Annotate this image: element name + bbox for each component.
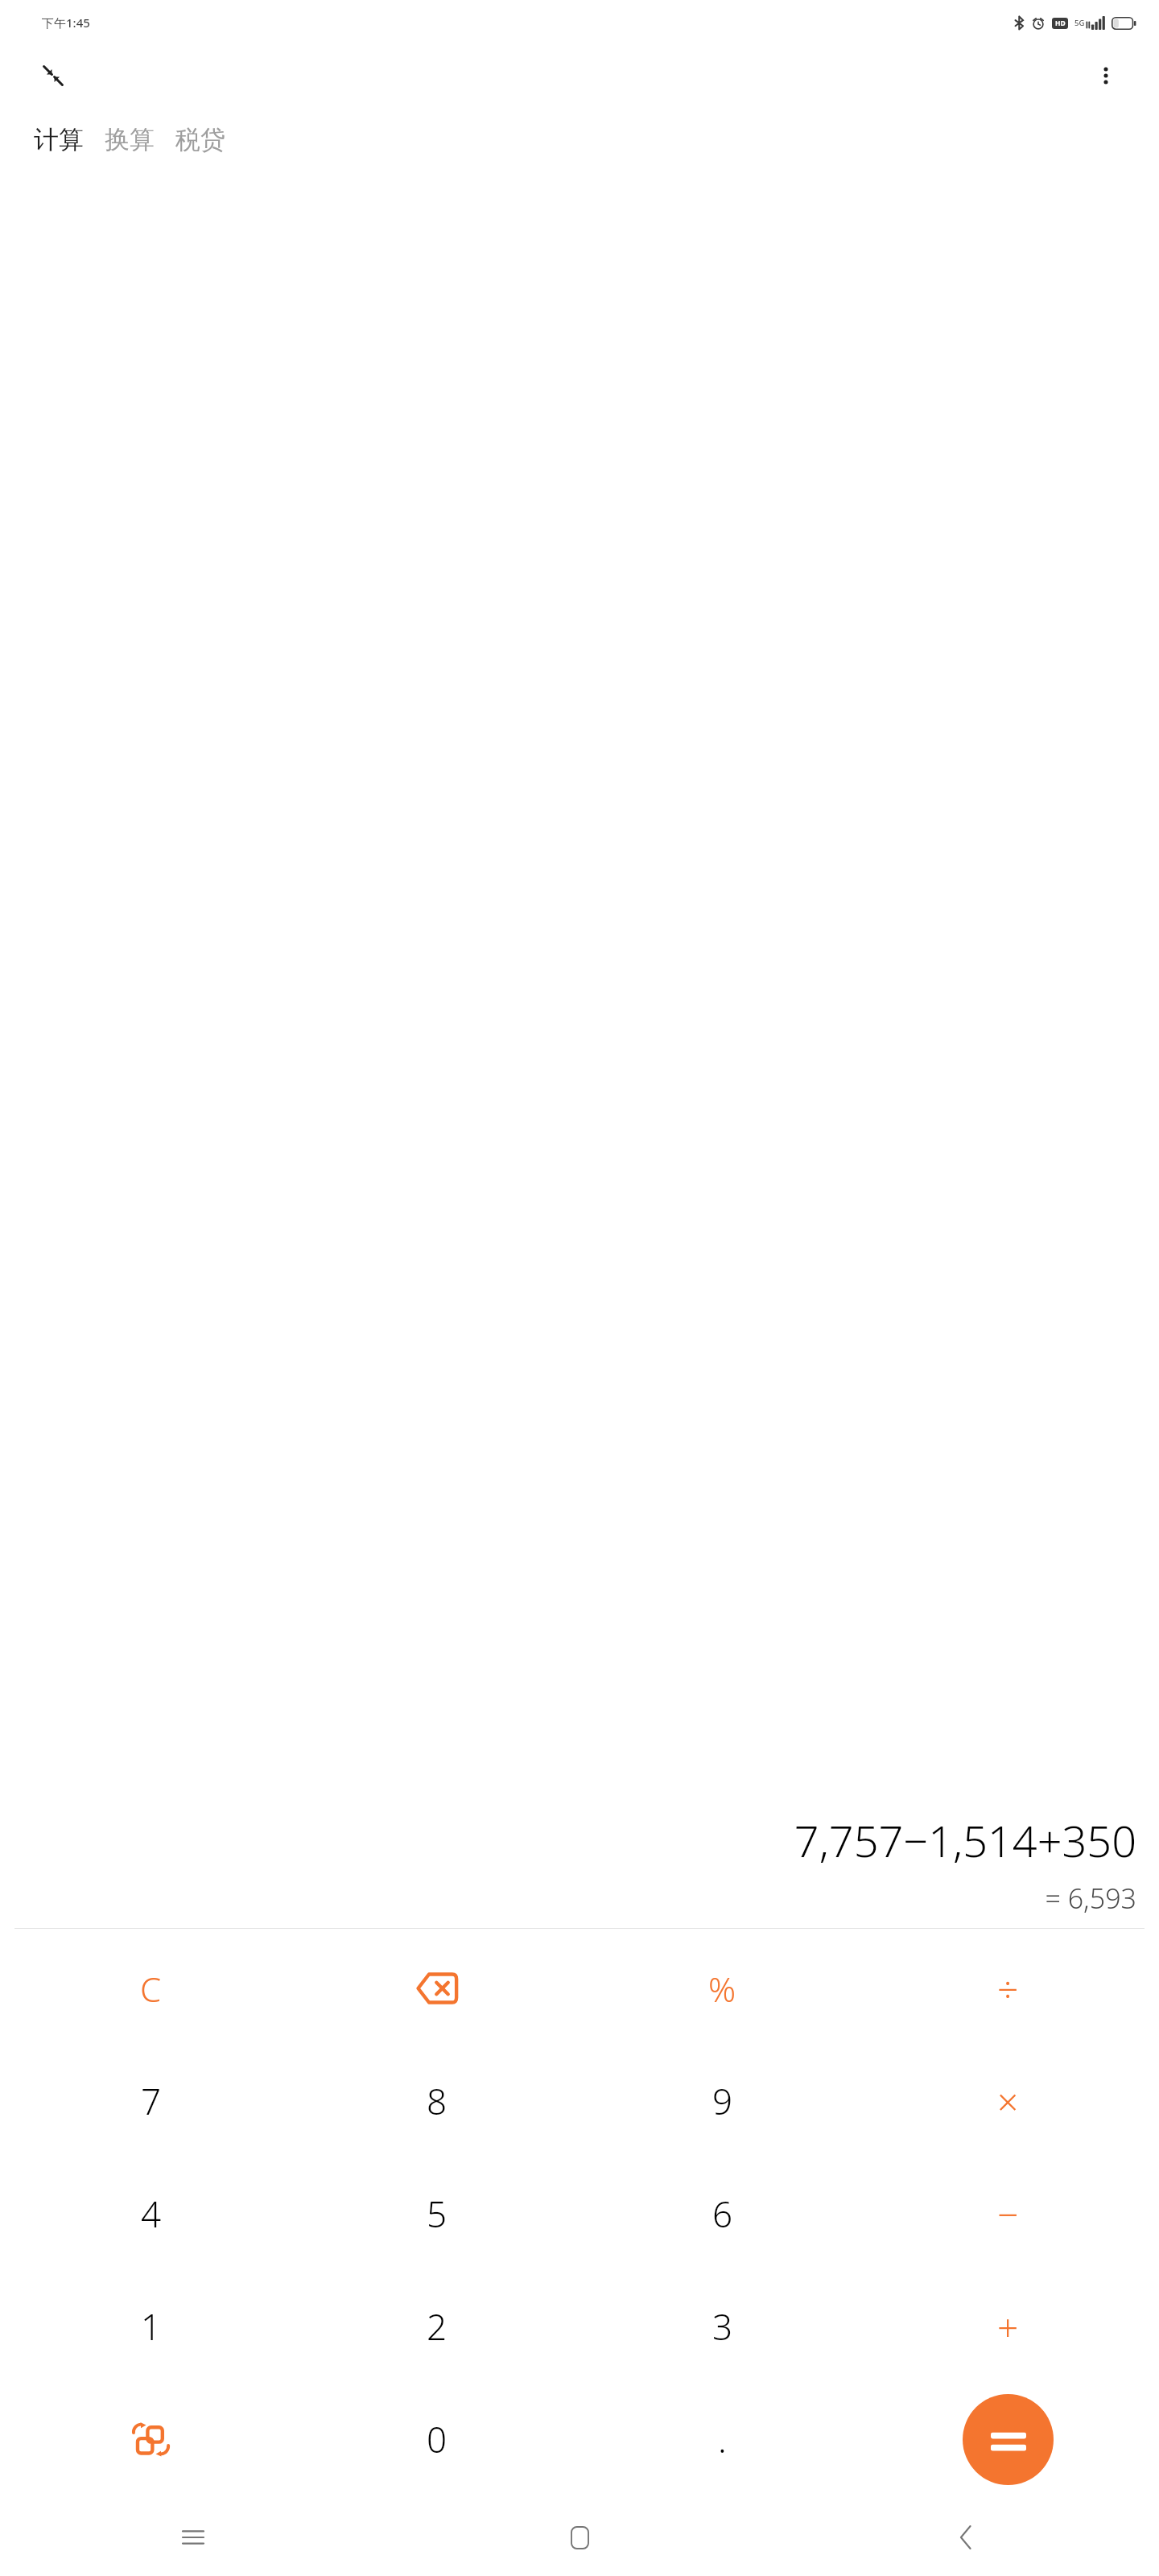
staticText: HD	[1055, 19, 1066, 28]
button[interactable]: .	[579, 2383, 865, 2495]
staticText: 5G	[1074, 18, 1085, 28]
button[interactable]: +	[865, 2270, 1151, 2383]
staticText: C	[140, 1966, 162, 2012]
staticText: +	[997, 2301, 1019, 2352]
staticText: 0	[427, 2415, 448, 2463]
staticText: 下午1:45	[42, 14, 90, 31]
button[interactable]: −	[865, 2157, 1151, 2270]
staticText: 5	[427, 2190, 448, 2238]
staticText: 9	[712, 2077, 733, 2125]
staticText: 计算	[34, 124, 84, 155]
staticText: .	[718, 2415, 727, 2463]
button[interactable]: More options	[1083, 53, 1128, 98]
staticText: −	[997, 2189, 1019, 2240]
staticText: 2	[427, 2302, 448, 2351]
button[interactable]: 3	[579, 2270, 865, 2383]
staticText: %	[708, 1966, 736, 2012]
button[interactable]: 7	[8, 2045, 294, 2157]
button[interactable]: Backspace	[294, 1932, 579, 2045]
button[interactable]: Recents	[0, 2499, 386, 2576]
button[interactable]: Unit convert	[8, 2383, 294, 2495]
button[interactable]: ×	[865, 2045, 1151, 2157]
button[interactable]: %	[579, 1932, 865, 2045]
staticText: 1	[141, 2302, 162, 2351]
staticText: 8	[427, 2077, 448, 2125]
staticText: 4	[141, 2190, 162, 2238]
staticText: 7	[141, 2077, 162, 2125]
button[interactable]: 6	[579, 2157, 865, 2270]
staticText: 换算	[105, 124, 155, 155]
button[interactable]: Back	[773, 2499, 1159, 2576]
button[interactable]: 8	[294, 2045, 579, 2157]
staticText: 3	[712, 2302, 733, 2351]
button[interactable]: 1	[8, 2270, 294, 2383]
button[interactable]: C	[8, 1932, 294, 2045]
staticText: 税贷	[175, 124, 225, 155]
button[interactable]: Equals	[865, 2383, 1151, 2495]
staticText: = 6,593	[1045, 1880, 1136, 1917]
staticText: 7,757−1,514+350	[794, 1810, 1136, 1870]
button[interactable]: 4	[8, 2157, 294, 2270]
staticText: ÷	[997, 1963, 1019, 2014]
button[interactable]: 0	[294, 2383, 579, 2495]
button[interactable]: 2	[294, 2270, 579, 2383]
staticText: 6	[712, 2190, 733, 2238]
button[interactable]: 换算	[103, 121, 156, 159]
button[interactable]: ÷	[865, 1932, 1151, 2045]
button[interactable]: Collapse	[31, 53, 76, 98]
button[interactable]: 5	[294, 2157, 579, 2270]
staticText: ×	[997, 2076, 1019, 2127]
button[interactable]: 计算	[32, 121, 85, 159]
button[interactable]: Home	[386, 2499, 773, 2576]
button[interactable]: 税贷	[174, 121, 227, 159]
button[interactable]: 9	[579, 2045, 865, 2157]
